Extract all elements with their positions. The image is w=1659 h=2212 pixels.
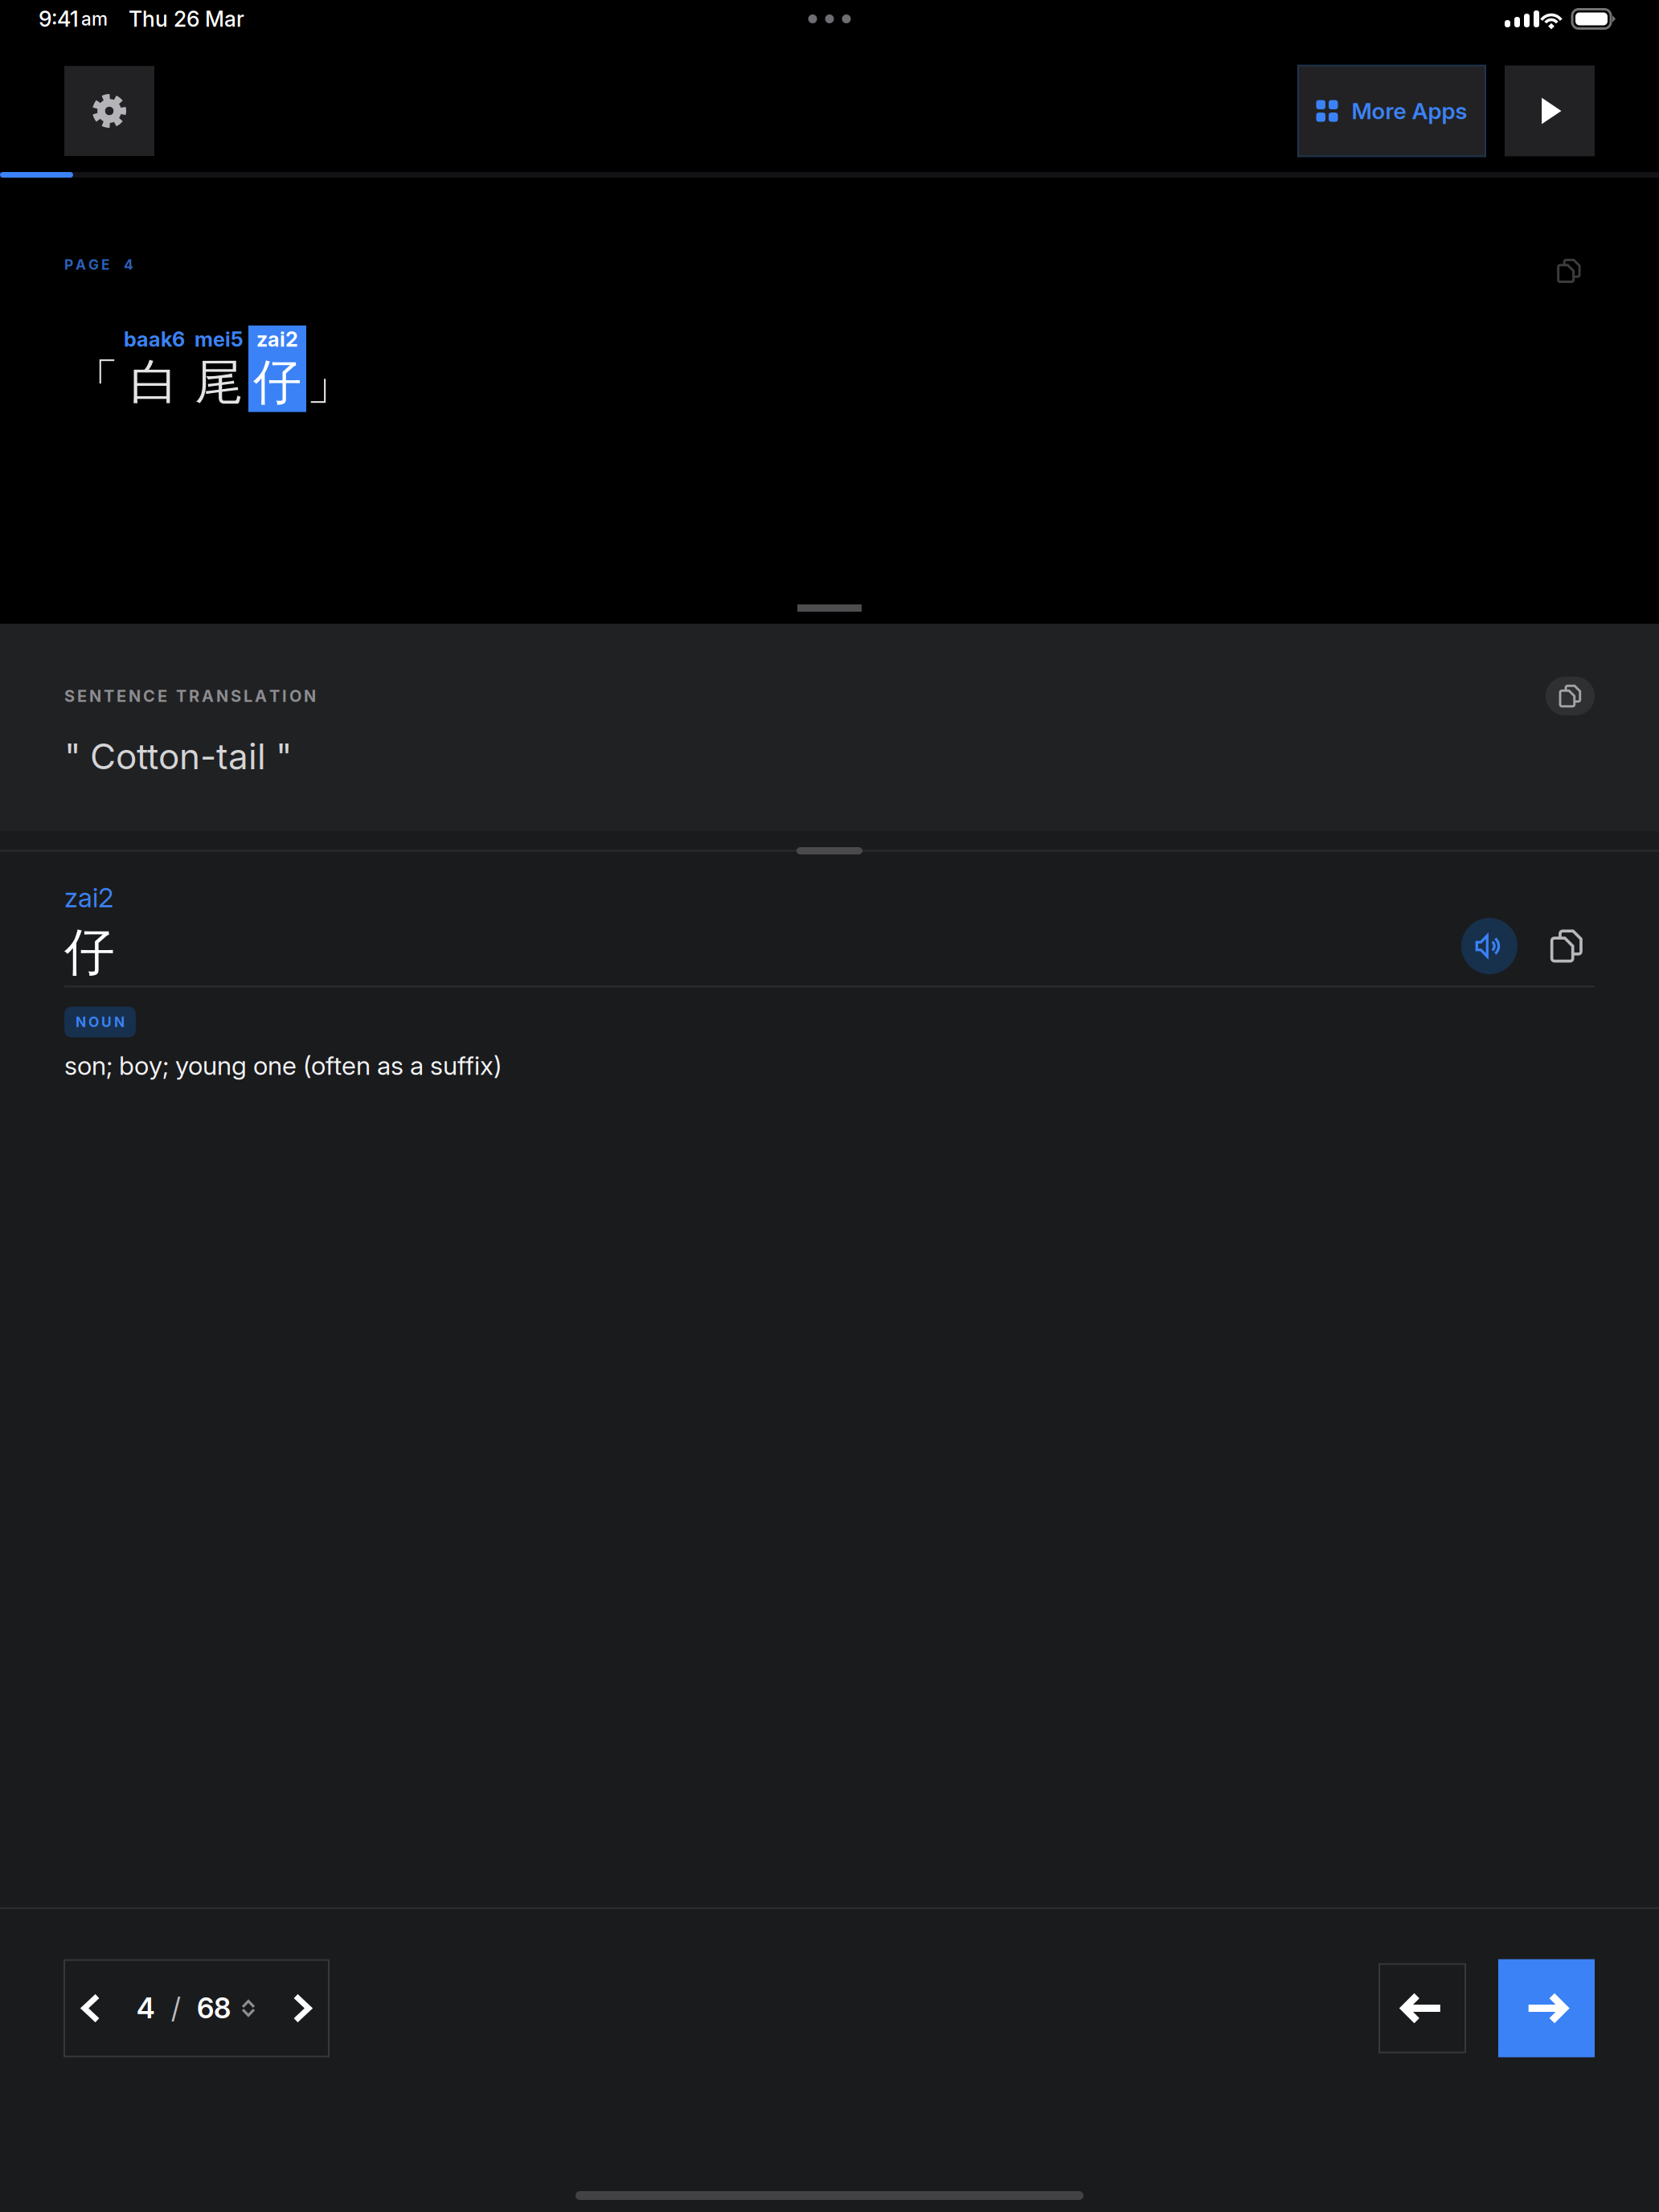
button[interactable]: More Apps xyxy=(1298,66,1485,156)
staticText: baak6 xyxy=(124,327,185,351)
staticText: son; boy; young one (often as a suffix) xyxy=(64,1050,502,1081)
staticText: P A G E 4 xyxy=(64,256,133,273)
staticText: 仔 xyxy=(253,353,301,412)
button[interactable]: Copy translation xyxy=(1546,677,1595,715)
staticText: / xyxy=(171,1992,181,2025)
staticText: 仔 xyxy=(64,921,115,983)
staticText: More Apps xyxy=(1352,98,1467,124)
staticText: 白 xyxy=(130,353,178,412)
staticText: mei5 xyxy=(195,327,244,351)
button[interactable]: Play xyxy=(1505,66,1595,156)
button[interactable]: Settings xyxy=(64,66,154,156)
button[interactable]: Copy word xyxy=(1538,918,1595,974)
button[interactable]: Back xyxy=(1379,1964,1465,2052)
staticText: 尾 xyxy=(195,353,243,412)
button[interactable]: Forward xyxy=(1498,1959,1595,2057)
staticText: 68 xyxy=(197,1992,231,2025)
button[interactable]: Next page xyxy=(282,1988,322,2028)
staticText: zai2 xyxy=(64,882,113,913)
staticText: 「 xyxy=(71,353,119,412)
staticText: am xyxy=(81,8,108,30)
staticText: N O U N xyxy=(76,1014,125,1030)
staticText: S E N T E N C E T R A N S L A T I O N xyxy=(64,687,316,706)
button[interactable]: Pronounce xyxy=(1461,918,1518,974)
staticText: 4 xyxy=(137,1992,155,2025)
staticText: zai2 xyxy=(256,327,298,351)
staticText: Thu 26 Mar xyxy=(129,6,244,32)
staticText: " Cotton-tail " xyxy=(64,735,292,777)
button[interactable]: Previous page xyxy=(71,1988,111,2028)
staticText: 」 xyxy=(306,353,354,412)
staticText: 9:41 xyxy=(39,6,79,32)
button[interactable]: Copy sentence xyxy=(1548,250,1595,292)
